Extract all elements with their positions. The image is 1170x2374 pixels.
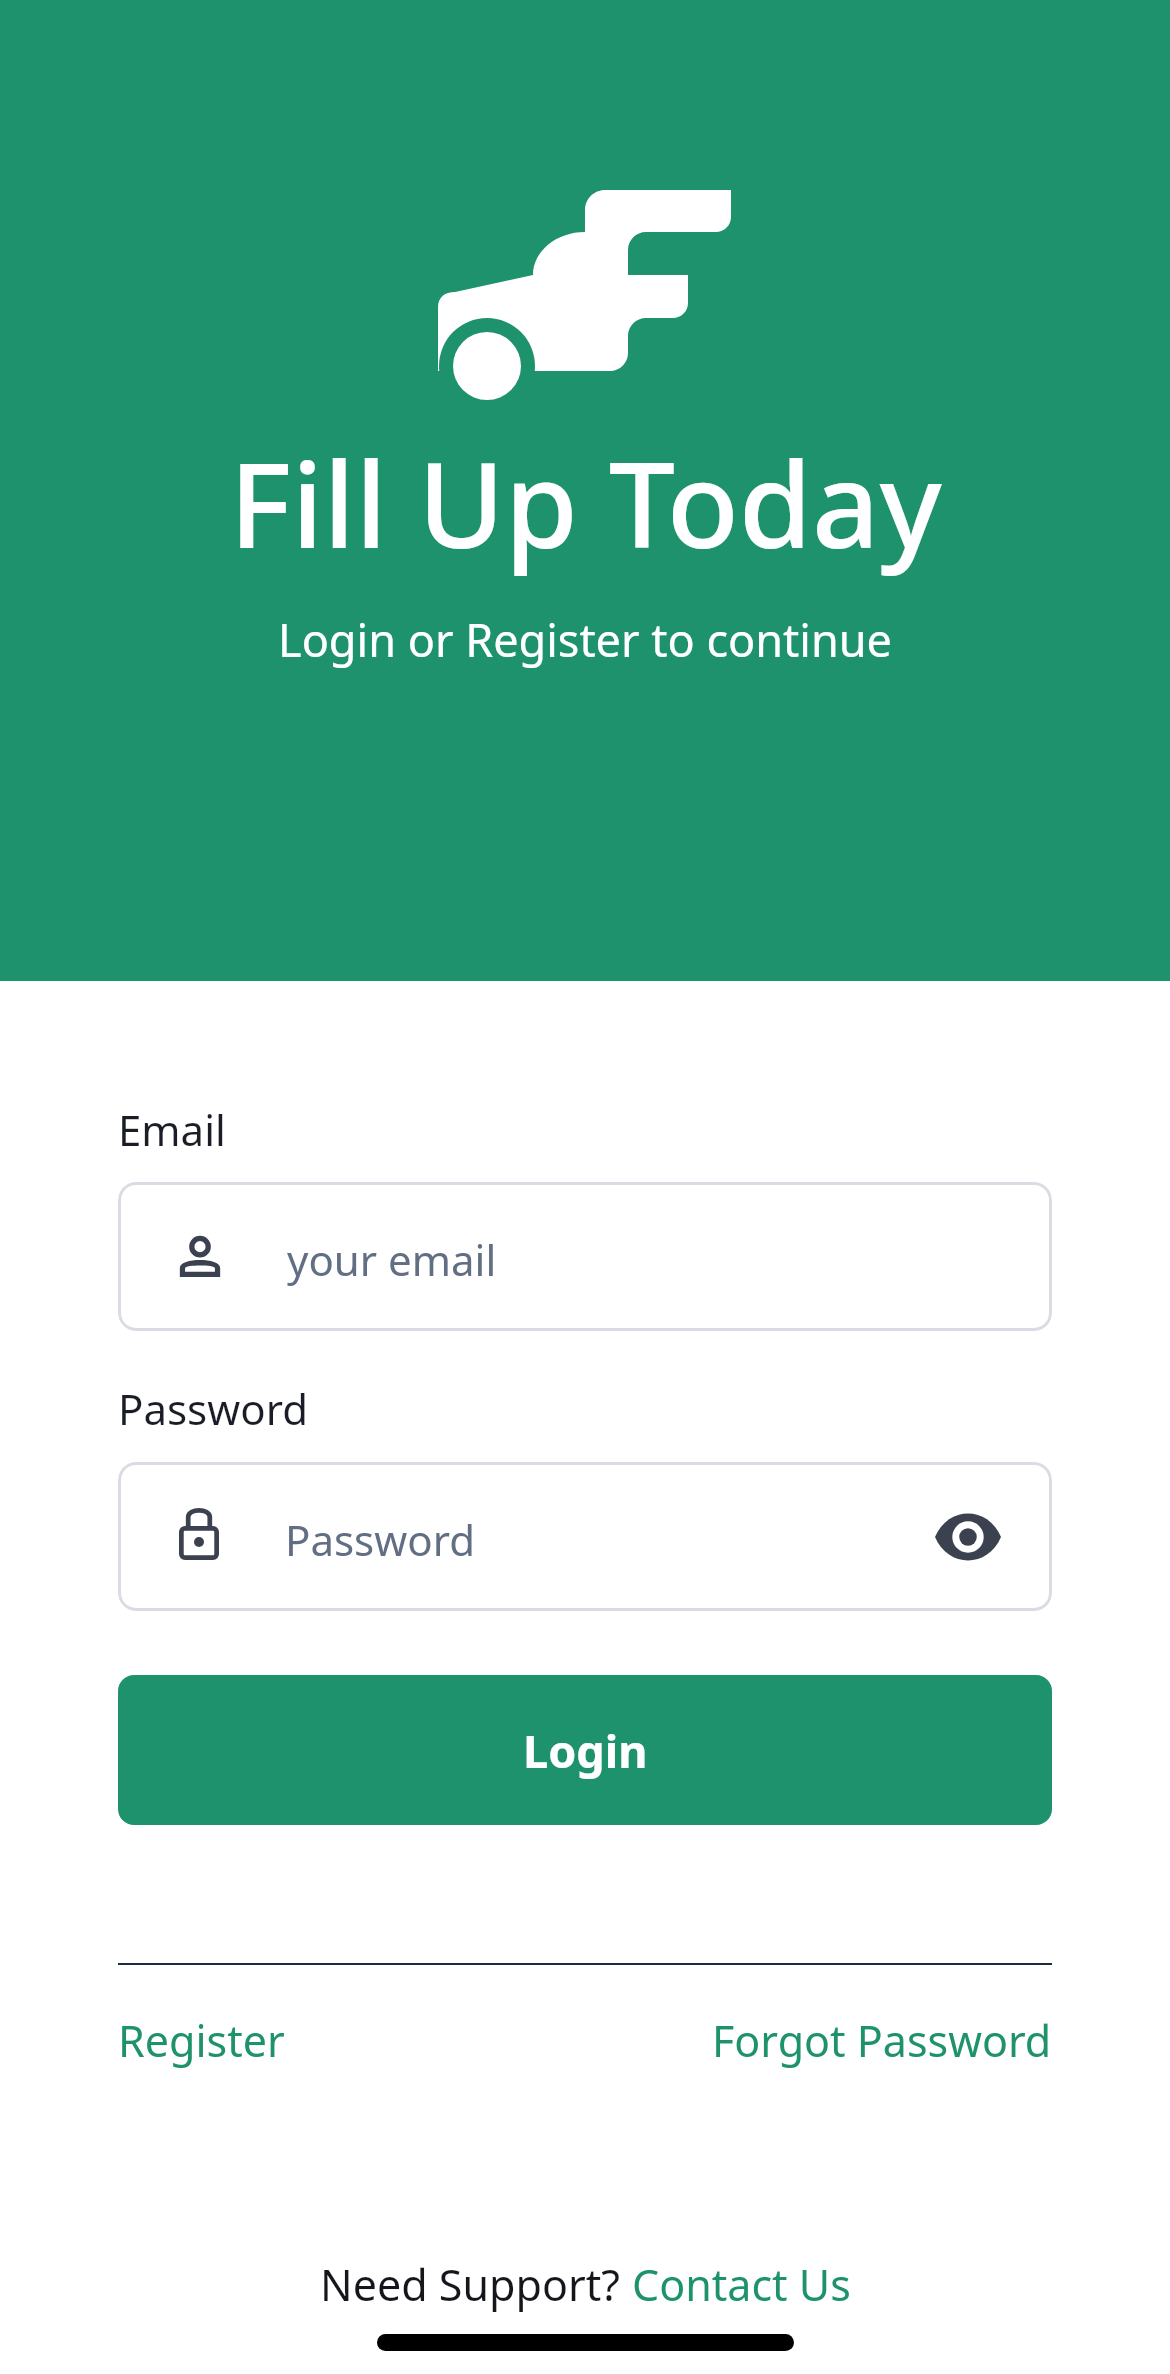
staticText: Password xyxy=(285,1511,475,1568)
staticText: Register xyxy=(118,2011,285,2070)
button[interactable]: Forgot Password xyxy=(698,1997,1066,2084)
button[interactable]: Show password xyxy=(925,1494,1011,1580)
staticText: Forgot Password xyxy=(712,2011,1052,2070)
staticText: Email xyxy=(118,1101,226,1158)
staticText: Login or Register to continue xyxy=(278,609,892,670)
button[interactable]: Password xyxy=(118,1462,1052,1611)
button[interactable]: Contact Us xyxy=(632,2255,851,2314)
staticText: Fill Up Today xyxy=(229,422,942,583)
button[interactable]: Login xyxy=(118,1675,1052,1825)
staticText: your email xyxy=(287,1231,497,1288)
button[interactable]: Register xyxy=(104,1997,299,2084)
staticText: Need Support? xyxy=(320,2255,632,2314)
other: Show password xyxy=(935,1514,1001,1560)
staticText: Login xyxy=(523,1720,648,1781)
staticText: Password xyxy=(118,1380,308,1437)
button[interactable]: your email xyxy=(118,1182,1052,1331)
